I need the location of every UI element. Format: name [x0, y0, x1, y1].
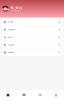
staticText: Orders	[8, 36, 14, 38]
button[interactable]: Payments	[2, 26, 62, 33]
button[interactable]: Profile	[2, 19, 62, 25]
button[interactable]: Orders	[2, 34, 62, 41]
staticText: Welcome back	[11, 10, 21, 12]
button[interactable]: Home	[0, 93, 16, 97]
staticText: Support	[8, 52, 15, 53]
button[interactable]: Cards	[16, 93, 32, 97]
staticText: Payments	[8, 29, 16, 31]
button[interactable]: Stats	[32, 93, 48, 97]
button[interactable]: Settings	[2, 41, 62, 48]
button[interactable]: Support	[2, 49, 62, 56]
button[interactable]: Profile	[48, 93, 64, 97]
staticText: Hi, Jane	[11, 6, 23, 9]
staticText: Settings	[8, 44, 15, 46]
staticText: Profile	[8, 21, 13, 23]
